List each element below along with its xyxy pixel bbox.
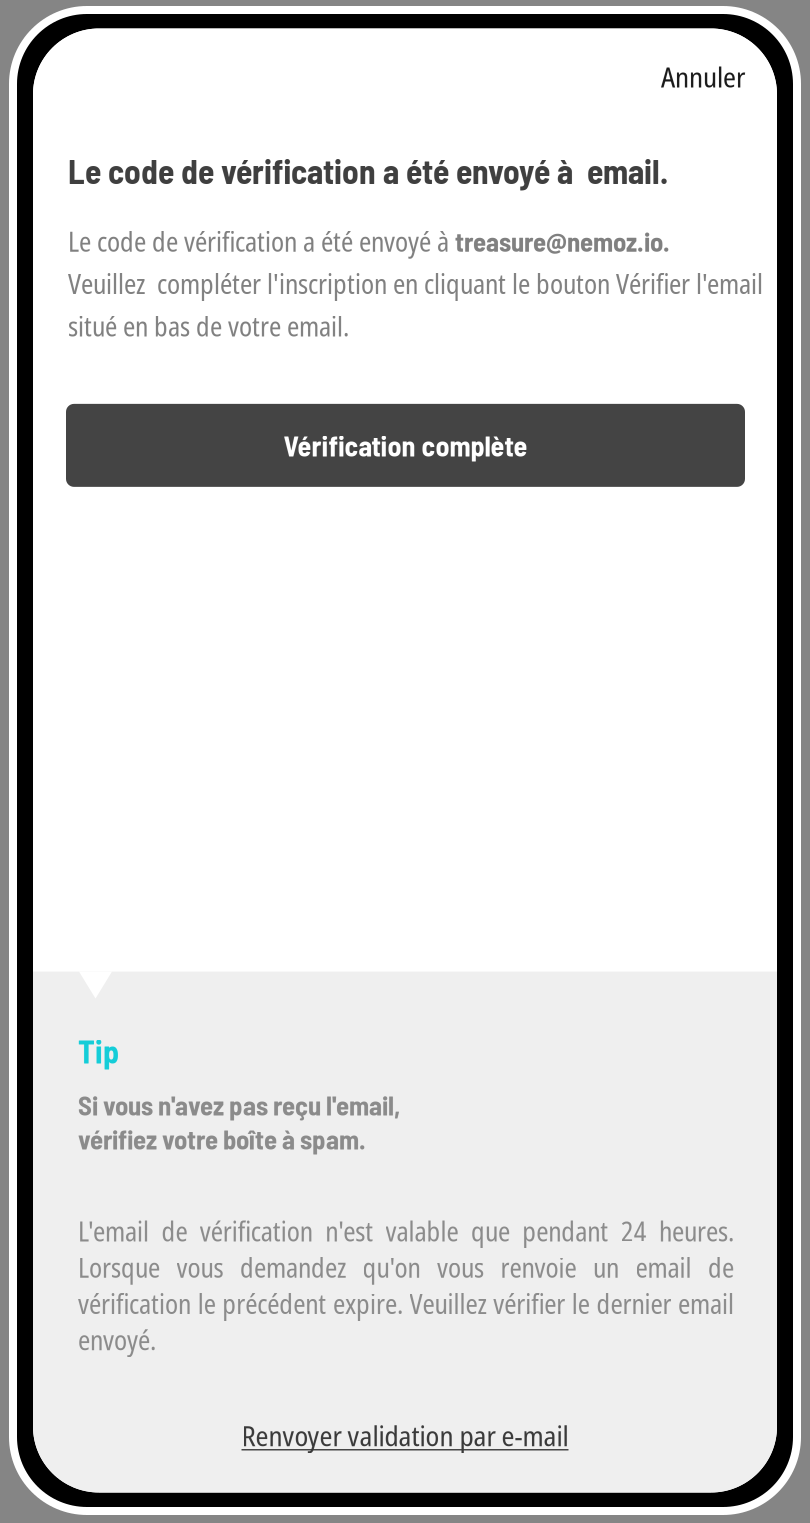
- staticText: vérification: [78, 1285, 191, 1322]
- staticText: Veuillez: [409, 1285, 486, 1322]
- staticText: Annuler: [661, 57, 745, 96]
- staticText: dernier: [596, 1285, 671, 1322]
- staticText: le: [198, 1285, 216, 1322]
- staticText: heures.: [659, 1213, 734, 1249]
- staticText: pendant: [522, 1213, 608, 1249]
- staticText: vérifier: [493, 1285, 565, 1322]
- staticText: valable: [385, 1213, 458, 1249]
- staticText: de: [161, 1213, 187, 1249]
- staticText: vous: [437, 1249, 484, 1285]
- staticText: Si vous n'avez pas reçu l'email, vérifie…: [78, 1089, 400, 1155]
- staticText: renvoie: [500, 1249, 576, 1285]
- button[interactable]: Renvoyer validation par e-mail: [33, 1400, 777, 1492]
- staticText: qu'on: [362, 1249, 420, 1285]
- staticText: demandez: [240, 1249, 346, 1285]
- staticText: L'email: [78, 1213, 149, 1249]
- staticText: email: [635, 1249, 691, 1285]
- staticText: le: [572, 1285, 590, 1322]
- button[interactable]: Annuler: [635, 28, 777, 110]
- staticText: vérification: [200, 1213, 313, 1249]
- staticText: Lorsque: [78, 1249, 160, 1285]
- staticText: expire.: [333, 1285, 403, 1322]
- staticText: Le code de vérification a été envoyé à t…: [68, 224, 763, 344]
- staticText: 24: [621, 1213, 647, 1249]
- staticText: précédent: [222, 1285, 326, 1322]
- staticText: Tip: [78, 1031, 119, 1070]
- staticText: un: [593, 1249, 619, 1285]
- staticText: email: [678, 1285, 734, 1322]
- staticText: Le code de vérification a été envoyé à e…: [68, 151, 668, 191]
- button[interactable]: Vérification complète: [66, 404, 745, 487]
- staticText: Renvoyer validation par e-mail: [241, 1416, 568, 1454]
- staticText: de: [708, 1249, 734, 1285]
- staticText: que: [471, 1213, 510, 1249]
- staticText: n'est: [325, 1213, 373, 1249]
- staticText: vous: [176, 1249, 223, 1285]
- staticText: Vérification complète: [283, 429, 527, 462]
- staticText: envoyé.: [78, 1322, 156, 1358]
